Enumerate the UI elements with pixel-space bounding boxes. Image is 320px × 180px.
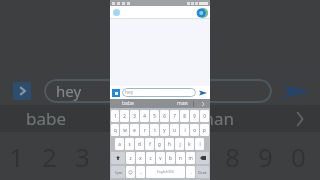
button[interactable]: d [135,138,144,150]
staticText: b [169,155,172,161]
button[interactable]: r [140,124,149,136]
staticText: x [139,155,142,161]
button[interactable]: m [186,152,195,164]
staticText: r [144,127,146,133]
staticText: 4 [143,113,146,119]
button[interactable]: n [176,152,185,164]
staticText: j [179,141,181,147]
staticText: h [168,141,171,147]
staticText: d [138,141,141,147]
button[interactable]: Send [198,88,208,98]
button[interactable]: a [115,138,124,150]
staticText: man [198,107,234,130]
button[interactable]: 3 [130,110,139,122]
button[interactable]: b [166,152,175,164]
staticText: c [149,155,152,161]
button[interactable]: 0 [200,110,209,122]
button[interactable]: o [190,124,199,136]
button[interactable]: c [146,152,155,164]
button[interactable]: . [186,166,195,178]
button[interactable]: man [177,100,188,107]
staticText: 8 [225,139,240,174]
staticText: f [149,141,151,147]
staticText: y [163,127,166,133]
button[interactable]: 5 [150,110,159,122]
staticText: z [129,155,132,161]
button[interactable]: ☺ [126,166,135,178]
staticText: 9 [193,113,196,119]
staticText: a [118,141,121,147]
button[interactable]: i [180,124,189,136]
staticText: m [188,155,193,161]
button[interactable]: hey [122,88,196,97]
button[interactable]: w [120,124,129,136]
button[interactable]: v [156,152,165,164]
button[interactable]: Done [196,166,209,178]
staticText: p [203,127,206,133]
button[interactable]: t [150,124,159,136]
button[interactable]: 4 [140,110,149,122]
staticText: l [199,141,201,147]
staticText: babe [26,107,67,130]
staticText: 0 [291,139,306,174]
staticText: 7 [173,113,176,119]
button[interactable]: x [136,152,145,164]
button[interactable]: g [155,138,164,150]
staticText: 3 [133,113,136,119]
button[interactable]: h [165,138,174,150]
staticText: . [190,169,192,175]
staticText: Sym [115,170,122,175]
staticText: k [188,141,191,147]
staticText: i [184,127,186,133]
staticText: v [159,155,162,161]
staticText: u [173,127,176,133]
button[interactable]: s [125,138,134,150]
button[interactable]: l [195,138,204,150]
staticText: 2 [42,139,57,174]
button[interactable]: f [145,138,154,150]
button[interactable]: Attach [112,89,120,97]
staticText: q [114,127,117,133]
staticText: 1 [9,139,24,174]
staticText: hey [125,89,134,96]
button[interactable]: 8 [180,110,189,122]
button[interactable]: , [136,166,145,178]
button[interactable]: 6 [160,110,169,122]
button[interactable]: q [111,124,119,136]
staticText: n [179,155,182,161]
staticText: ☺ [128,170,133,175]
staticText: 5 [153,113,156,119]
button[interactable]: z [126,152,135,164]
staticText: Done [198,170,207,175]
button[interactable]: Account [197,8,207,18]
button[interactable]: j [175,138,184,150]
staticText: 6 [163,113,166,119]
button[interactable]: Sym [111,166,125,178]
staticText: 0 [203,113,206,119]
staticText: hey [56,81,82,101]
button[interactable]: k [185,138,194,150]
staticText: 9 [258,139,273,174]
staticText: e [133,127,136,133]
button[interactable]: p [200,124,209,136]
staticText: 1 [114,113,117,119]
staticText: English(US) [157,170,174,174]
staticText: w [123,127,127,133]
button[interactable]: e [130,124,139,136]
button[interactable]: Backspace [196,152,209,164]
staticText: s [128,141,131,147]
button[interactable]: 2 [120,110,129,122]
button[interactable]: 1 [111,110,119,122]
button[interactable]: y [160,124,169,136]
button[interactable]: Shift [111,152,125,164]
staticText: g [158,141,161,147]
button[interactable]: Space [146,166,185,178]
button[interactable]: 9 [190,110,199,122]
button[interactable]: 7 [170,110,179,122]
button[interactable]: u [170,124,179,136]
staticText: 3 [75,139,90,174]
button[interactable]: babe [122,100,134,107]
button[interactable]: Contact photo [113,9,120,16]
staticText: 8 [183,113,186,119]
staticText: o [193,127,196,133]
